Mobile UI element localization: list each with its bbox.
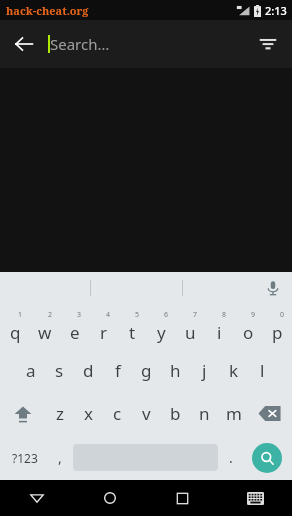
staticText: e bbox=[70, 321, 80, 344]
button[interactable]: . bbox=[220, 435, 242, 480]
staticText: t bbox=[129, 321, 136, 344]
staticText: s bbox=[55, 359, 64, 382]
staticText: l bbox=[260, 359, 265, 382]
staticText: p bbox=[272, 321, 283, 344]
button[interactable]: Voice input bbox=[254, 272, 292, 304]
button[interactable]: b bbox=[161, 392, 190, 435]
staticText: 2 bbox=[48, 310, 53, 320]
staticText: z bbox=[56, 402, 64, 425]
staticText: f bbox=[115, 359, 121, 382]
button[interactable]: Back bbox=[0, 20, 48, 68]
staticText: m bbox=[226, 402, 242, 425]
staticText: o bbox=[243, 321, 254, 344]
button[interactable]: Filter bbox=[244, 20, 292, 68]
button[interactable]: x bbox=[74, 392, 103, 435]
button[interactable]: 4 bbox=[89, 304, 118, 349]
button[interactable]: v bbox=[132, 392, 161, 435]
button[interactable]: Switch keyboard bbox=[219, 480, 292, 516]
staticText: v bbox=[142, 402, 151, 425]
staticText: 4 bbox=[106, 310, 111, 320]
button[interactable]: m bbox=[219, 392, 248, 435]
button[interactable]: Back bbox=[0, 480, 73, 516]
staticText: g bbox=[141, 359, 152, 382]
button[interactable]: g bbox=[132, 349, 161, 392]
button[interactable]: 3 bbox=[60, 304, 89, 349]
button[interactable]: Search bbox=[252, 443, 282, 473]
button[interactable]: , bbox=[49, 435, 71, 480]
button[interactable]: ?123 bbox=[0, 435, 49, 480]
button[interactable]: 8 bbox=[205, 304, 234, 349]
staticText: u bbox=[185, 321, 196, 344]
button[interactable]: f bbox=[103, 349, 132, 392]
button[interactable]: Backspace bbox=[248, 392, 292, 435]
button[interactable]: d bbox=[74, 349, 103, 392]
button[interactable]: 0 bbox=[263, 304, 292, 349]
button[interactable]: n bbox=[190, 392, 219, 435]
staticText: c bbox=[113, 402, 122, 425]
button[interactable]: k bbox=[219, 349, 248, 392]
staticText: 1 bbox=[18, 310, 23, 320]
staticText: 3 bbox=[77, 310, 82, 320]
button[interactable]: h bbox=[161, 349, 190, 392]
button[interactable]: 5 bbox=[118, 304, 147, 349]
button[interactable]: z bbox=[45, 392, 74, 435]
button[interactable]: j bbox=[190, 349, 219, 392]
staticText: r bbox=[100, 321, 108, 344]
staticText: 7 bbox=[193, 310, 198, 320]
staticText: 2:13 bbox=[265, 3, 287, 18]
button[interactable]: Recents bbox=[146, 480, 219, 516]
staticText: y bbox=[157, 321, 166, 344]
staticText: h bbox=[170, 359, 181, 382]
button[interactable]: s bbox=[45, 349, 74, 392]
staticText: 8 bbox=[222, 310, 227, 320]
staticText: , bbox=[58, 448, 62, 467]
button[interactable]: Search… bbox=[48, 20, 244, 68]
staticText: 6 bbox=[164, 310, 169, 320]
staticText: n bbox=[199, 402, 210, 425]
button[interactable]: 1 bbox=[0, 304, 30, 349]
staticText: 0 bbox=[280, 310, 285, 320]
staticText: i bbox=[217, 321, 222, 344]
staticText: 5 bbox=[135, 310, 140, 320]
staticText: b bbox=[170, 402, 181, 425]
staticText: 9 bbox=[251, 310, 256, 320]
staticText: k bbox=[229, 359, 239, 382]
staticText: . bbox=[229, 448, 233, 467]
button[interactable]: 9 bbox=[234, 304, 263, 349]
staticText: j bbox=[202, 359, 207, 382]
button[interactable]: 6 bbox=[147, 304, 176, 349]
staticText: a bbox=[26, 359, 36, 382]
button[interactable]: 2 bbox=[30, 304, 60, 349]
staticText: x bbox=[84, 402, 93, 425]
button[interactable]: l bbox=[248, 349, 277, 392]
staticText: q bbox=[10, 321, 21, 344]
staticText: w bbox=[38, 321, 52, 344]
staticText: Search… bbox=[50, 34, 110, 54]
button[interactable]: a bbox=[16, 349, 45, 392]
button[interactable]: Shift bbox=[0, 392, 45, 435]
button[interactable]: 7 bbox=[176, 304, 205, 349]
staticText: ?123 bbox=[12, 450, 38, 466]
staticText: hack-cheat.org bbox=[6, 3, 89, 18]
staticText: d bbox=[83, 359, 94, 382]
button[interactable]: Home bbox=[73, 480, 146, 516]
button[interactable]: c bbox=[103, 392, 132, 435]
